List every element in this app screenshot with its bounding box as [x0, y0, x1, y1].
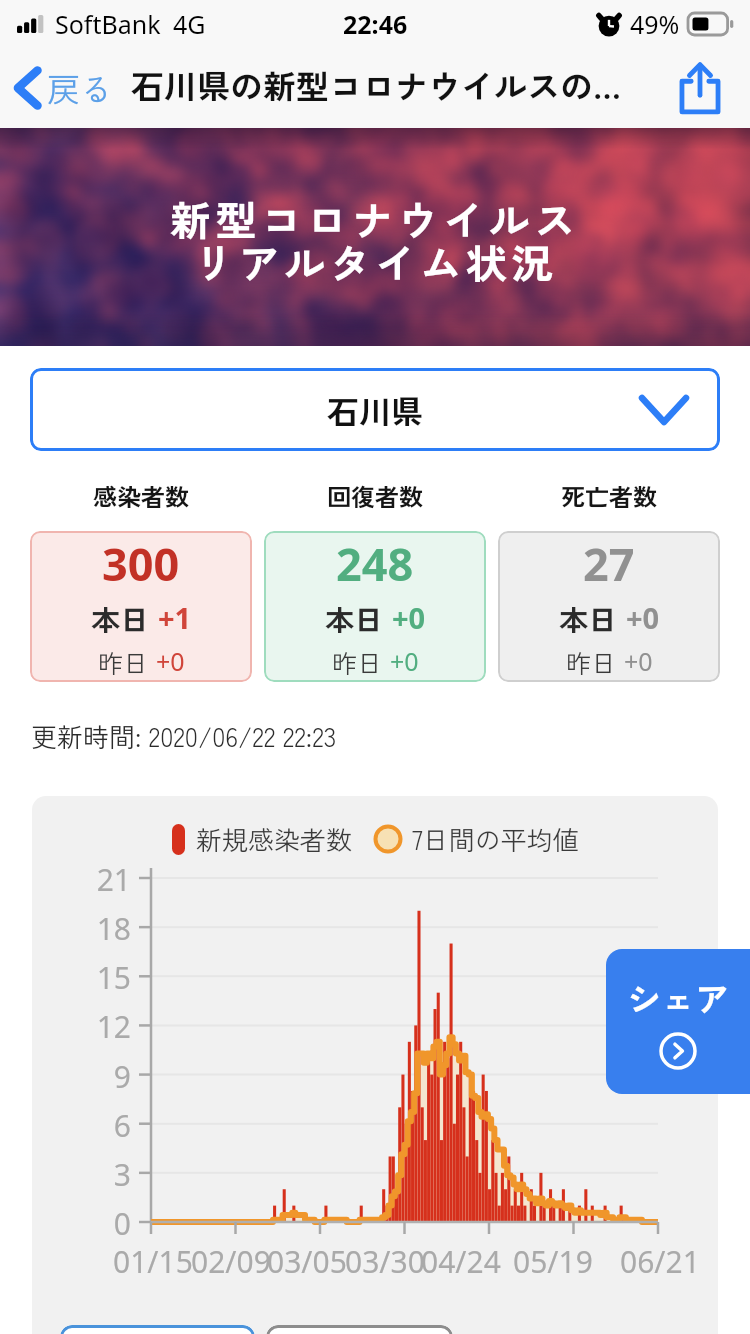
staticText: 回復者数 — [327, 478, 423, 513]
staticText: 18 — [51, 908, 131, 949]
staticText: 昨日 — [566, 644, 624, 680]
staticText: 21 — [51, 859, 131, 900]
button[interactable]: 石川県 — [30, 368, 720, 451]
staticText: 9 — [51, 1056, 131, 1097]
staticText: 49% — [630, 7, 680, 41]
staticText: 死亡者数 — [561, 478, 657, 513]
button[interactable] — [60, 1325, 255, 1334]
staticText: +0 — [626, 598, 660, 637]
button[interactable]: 戻る — [0, 48, 123, 128]
staticText: 本日 — [91, 597, 158, 639]
staticText: +0 — [624, 644, 653, 678]
staticText: 4G — [173, 7, 206, 41]
staticText: 戻る — [47, 64, 113, 112]
staticText: 04/24 — [421, 1241, 501, 1282]
staticText: +0 — [392, 598, 426, 637]
staticText: 石川県の新型コロナウイルスの… — [131, 61, 622, 109]
staticText: 新型コロナウイルス — [170, 188, 580, 247]
button[interactable]: シェア Share — [606, 949, 750, 1094]
staticText: 0 — [51, 1203, 131, 1244]
staticText: 05/19 — [513, 1241, 593, 1282]
staticText: SoftBank — [55, 7, 161, 41]
staticText: 3 — [51, 1154, 131, 1195]
staticText: 昨日 — [332, 644, 390, 680]
button[interactable]: 300 — [30, 531, 252, 682]
button[interactable]: 248 — [264, 531, 486, 682]
staticText: +0 — [156, 644, 185, 678]
staticText: 6 — [51, 1105, 131, 1146]
staticText: +1 — [158, 598, 192, 637]
staticText: 昨日 — [98, 644, 156, 680]
staticText: 01/15 — [113, 1241, 193, 1282]
staticText: 更新時間: 2020/06/22 22:23 — [31, 717, 337, 755]
button[interactable]: 27 — [498, 531, 720, 682]
staticText: 7日間の平均値 — [412, 820, 579, 858]
staticText: 02/09 — [191, 1241, 271, 1282]
button[interactable] — [266, 1325, 453, 1334]
staticText: 03/05 — [267, 1241, 347, 1282]
staticText: 本日 — [325, 597, 392, 639]
staticText: 300 — [102, 533, 180, 594]
staticText: 22:46 — [343, 7, 408, 41]
staticText: 27 — [583, 533, 635, 594]
staticText: 感染者数 — [93, 478, 189, 513]
staticText: +0 — [390, 644, 419, 678]
staticText: 03/30 — [345, 1241, 425, 1282]
button[interactable]: Share — [650, 48, 750, 128]
staticText: 248 — [336, 533, 414, 594]
staticText: 本日 — [559, 597, 626, 639]
staticText: シェア — [627, 973, 729, 1022]
staticText: 新規感染者数 — [196, 820, 353, 858]
staticText: 12 — [51, 1006, 131, 1047]
staticText: 06/21 — [620, 1241, 700, 1282]
staticText: リアルタイム状況 — [193, 231, 557, 290]
staticText: 石川県 — [327, 387, 424, 433]
staticText: 15 — [51, 957, 131, 998]
